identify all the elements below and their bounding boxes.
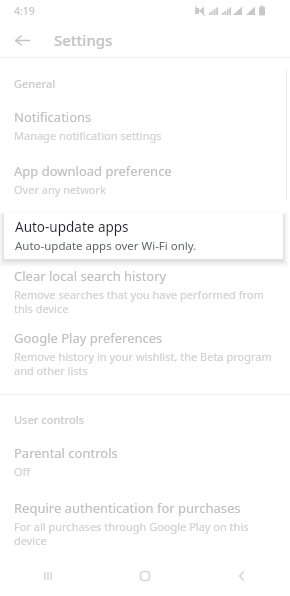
staticText: Remove searches that you have performed …: [14, 287, 276, 316]
staticText: Clear local search history: [14, 267, 167, 285]
staticText: Require authentication for purchases: [14, 499, 241, 517]
staticText: Notifications: [14, 108, 92, 126]
staticText: User controls: [14, 412, 84, 427]
staticText: General: [14, 76, 56, 91]
staticText: 4:19: [14, 4, 35, 18]
staticText: Google Play preferences: [14, 329, 163, 347]
staticText: Parental controls: [14, 444, 118, 462]
staticText: Auto-update apps over Wi-Fi only.: [15, 238, 197, 254]
staticText: App download preference: [14, 162, 172, 180]
staticText: Off: [14, 464, 31, 479]
button[interactable]: Clear local search history: [0, 267, 290, 316]
staticText: Over any network: [14, 182, 106, 197]
staticText: Remove history in your wishlist, the Bet…: [14, 349, 280, 378]
button[interactable]: Recent apps: [0, 556, 96, 596]
button[interactable]: Back: [8, 26, 36, 54]
staticText: Manage notification settings: [14, 128, 162, 143]
staticText: Auto-update apps: [15, 218, 129, 236]
button[interactable]: Require authentication for purchases: [0, 499, 290, 548]
staticText: For all purchases through Google Play on…: [14, 519, 280, 548]
button[interactable]: Notifications: [0, 108, 290, 143]
button[interactable]: Google Play preferences: [0, 329, 290, 378]
button[interactable]: Auto-update apps: [4, 213, 283, 259]
button[interactable]: Home: [96, 556, 193, 596]
button[interactable]: App download preference: [0, 162, 290, 197]
button[interactable]: Parental controls: [0, 444, 290, 479]
staticText: Settings: [54, 30, 113, 50]
